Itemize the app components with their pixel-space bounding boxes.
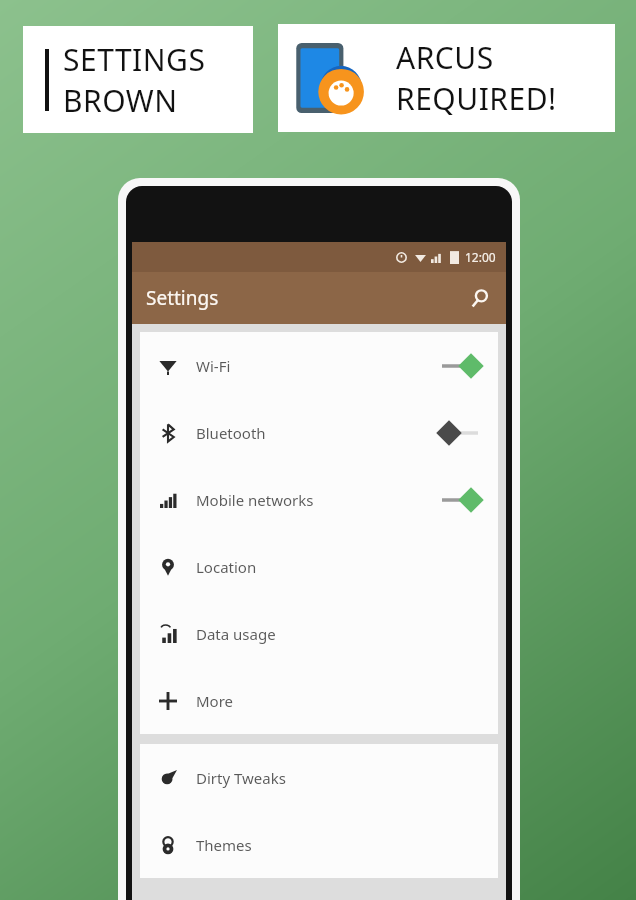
staticText: Data usage	[196, 624, 276, 644]
staticText: BROWN	[63, 80, 178, 121]
button[interactable]: SETTINGS	[23, 26, 253, 133]
staticText: SETTINGS	[63, 39, 206, 80]
button[interactable]: Mobile networks	[140, 466, 498, 533]
button[interactable]: More	[140, 667, 498, 734]
button[interactable]: Data usage	[140, 600, 498, 667]
button[interactable]: Themes	[140, 811, 498, 878]
staticText: ARCUS	[396, 37, 494, 78]
button[interactable]: Bluetooth switch	[440, 421, 480, 445]
staticText: Themes	[196, 835, 252, 855]
staticText: 12:00	[465, 249, 496, 265]
button[interactable]: ARCUS	[278, 24, 615, 132]
staticText: Mobile networks	[196, 490, 314, 510]
staticText: Dirty Tweaks	[196, 768, 286, 788]
staticText: Settings	[146, 285, 219, 311]
button[interactable]: Search	[462, 281, 496, 315]
button[interactable]: Location	[140, 533, 498, 600]
staticText: Location	[196, 557, 257, 577]
staticText: Wi-Fi	[196, 356, 231, 376]
button[interactable]: Mobile networks switch	[440, 488, 480, 512]
staticText: More	[196, 691, 234, 711]
button[interactable]: Wi-Fi switch	[440, 354, 480, 378]
staticText: Bluetooth	[196, 423, 266, 443]
button[interactable]: Dirty Tweaks	[140, 744, 498, 811]
button[interactable]: Wi-Fi	[140, 332, 498, 399]
button[interactable]: Bluetooth	[140, 399, 498, 466]
staticText: REQUIRED!	[396, 78, 557, 119]
